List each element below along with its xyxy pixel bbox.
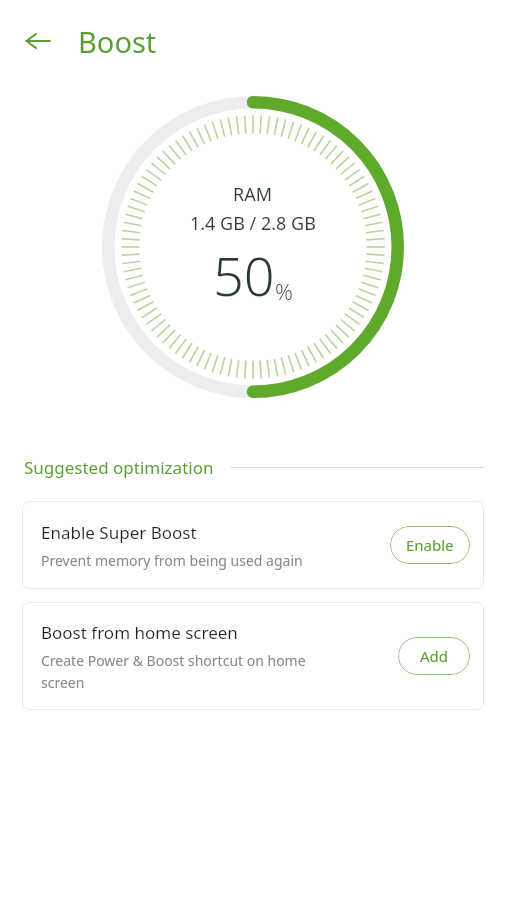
staticText: Add — [420, 646, 449, 666]
button[interactable]: Boost from home screen — [22, 602, 484, 710]
staticText: Create Power & Boost shortcut on home sc… — [41, 651, 306, 692]
staticText: Boost — [78, 22, 157, 61]
staticText: Enable Super Boost — [41, 521, 197, 544]
staticText: Enable — [406, 535, 454, 555]
staticText: RAM — [233, 182, 273, 207]
button[interactable]: Add — [398, 637, 470, 675]
button[interactable]: Back — [14, 17, 62, 65]
staticText: % — [275, 276, 293, 306]
button[interactable]: Enable Super Boost — [22, 501, 484, 589]
staticText: Suggested optimization — [24, 456, 214, 479]
staticText: 1.4 GB / 2.8 GB — [190, 211, 316, 236]
staticText: 50 — [213, 238, 275, 312]
staticText: Boost from home screen — [41, 621, 238, 644]
staticText: Prevent memory from being used again — [41, 551, 303, 570]
button[interactable]: Enable — [390, 526, 470, 564]
